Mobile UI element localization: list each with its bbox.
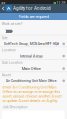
- button[interactable]: Asset: [0, 72, 67, 84]
- staticText: Asset: [2, 73, 11, 77]
- staticText: Internal Areas: [20, 54, 43, 58]
- button[interactable]: Fields are required: [0, 13, 67, 20]
- button[interactable]: Work at site: [0, 26, 13, 35]
- staticText: 11:39: [56, 1, 65, 5]
- staticText: Work at site?: [2, 22, 23, 26]
- staticText: Sub Location: [2, 60, 23, 65]
- button[interactable]: Location: [0, 47, 67, 59]
- staticText: Main Office: [22, 66, 41, 71]
- staticText: Job Description: [2, 105, 27, 109]
- button[interactable]: Back: [0, 4, 5, 13]
- staticText: Site: [2, 36, 8, 40]
- staticText: Agility for Android: [13, 6, 51, 11]
- staticText: Fields are required: [18, 14, 48, 19]
- button[interactable]: Sub Location: [0, 60, 67, 72]
- staticText: SoftTech Group, MCN Area/HFF HQ#: [4, 42, 59, 46]
- staticText: Location: [2, 48, 16, 52]
- staticText: email Air Conditioning Unit Main Office …: [2, 85, 61, 103]
- button[interactable]: Site: [0, 35, 67, 47]
- staticText: Air Conditioning Unit Main Office: [6, 79, 57, 83]
